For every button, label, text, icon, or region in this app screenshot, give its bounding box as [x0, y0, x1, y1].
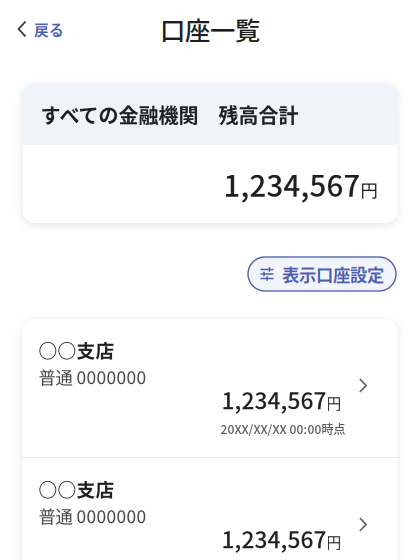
staticText: 1,234,567 [221, 522, 326, 555]
staticText: 1,234,567 [223, 163, 360, 205]
staticText: 円 [360, 177, 377, 202]
staticText: 20XX/XX/XX 00:00時点 [220, 420, 345, 437]
staticText: 戻る [34, 18, 64, 40]
button[interactable]: 表示口座設定 [248, 257, 396, 291]
button[interactable]: ○○支店 [22, 319, 397, 457]
staticText: 普通 0000000 [38, 364, 146, 389]
staticText: ○○支店 [38, 475, 114, 502]
staticText: 表示口座設定 [282, 261, 384, 287]
staticText: 1,234,567 [221, 383, 326, 416]
staticText: 口座一覧 [160, 11, 260, 47]
staticText: 普通 0000000 [38, 503, 146, 528]
staticText: すべての金融機関 残高合計 [40, 100, 298, 129]
staticText: ○○支店 [38, 336, 114, 363]
staticText: 円 [326, 531, 341, 552]
button[interactable]: 戻る [0, 7, 76, 51]
button[interactable]: ○○支店 [22, 458, 397, 560]
staticText: 円 [326, 392, 341, 413]
